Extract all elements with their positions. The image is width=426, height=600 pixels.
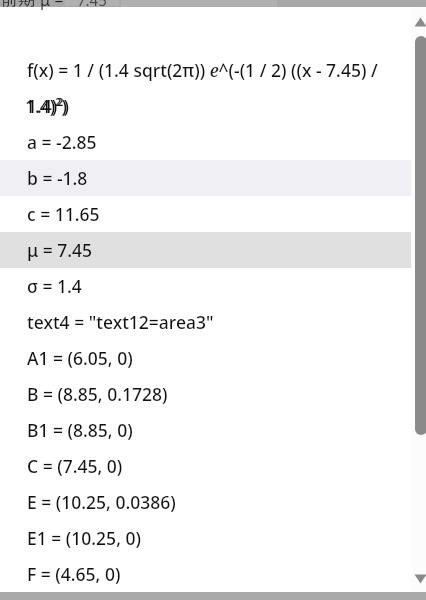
staticText: 7.45 [77, 0, 107, 10]
button[interactable]: F = (4.65, 0) [0, 556, 411, 592]
staticText: F = (4.65, 0) [27, 562, 121, 586]
button[interactable]: f(x) = 1 / (1.4 sqrt(2π)) e^(-(1 / 2) ((… [0, 52, 411, 88]
button[interactable]: B = (8.85, 0.1728) [0, 376, 411, 412]
staticText: 前期 [1, 0, 35, 10]
button[interactable]: Slider input row [0, 0, 426, 7]
staticText: 1.4)²) [27, 94, 69, 118]
staticText: 1.4)²) [25, 94, 67, 118]
staticText: f(x) = 1 / (1.4 sqrt(2π)) e^(-(1 / 2) ((… [27, 58, 378, 82]
button[interactable]: σ = 1.4 [0, 268, 411, 304]
button[interactable]: B1 = (8.85, 0) [0, 412, 411, 448]
button[interactable]: Scroll thumb [415, 36, 426, 435]
staticText: E = (10.25, 0.0386) [27, 490, 176, 514]
staticText: μ = 7.45 [27, 238, 93, 262]
staticText: E1 = (10.25, 0) [27, 526, 141, 550]
staticText: B1 = (8.85, 0) [27, 418, 133, 442]
staticText: A1 = (6.05, 0) [27, 346, 133, 370]
button[interactable]: c = 11.65 [0, 196, 411, 232]
staticText: B = (8.85, 0.1728) [27, 382, 168, 406]
staticText: C = (7.45, 0) [27, 454, 123, 478]
button[interactable]: A1 = (6.05, 0) [0, 340, 411, 376]
button[interactable]: E1 = (10.25, 0) [0, 520, 411, 556]
button[interactable]: μ = 7.45 [0, 232, 411, 268]
button[interactable]: b = -1.8 [0, 160, 411, 196]
button[interactable]: 1.4)²) [0, 88, 411, 124]
staticText: text4 = "text12=area3" [27, 310, 214, 334]
staticText: σ = 1.4 [27, 274, 82, 298]
staticText: b = -1.8 [27, 166, 88, 190]
staticText: a = -2.85 [27, 130, 97, 154]
button[interactable]: E = (10.25, 0.0386) [0, 484, 411, 520]
button[interactable]: C = (7.45, 0) [0, 448, 411, 484]
button[interactable]: text4 = "text12=area3" [0, 304, 411, 340]
staticText: μ = [40, 0, 64, 11]
staticText: c = 11.65 [27, 202, 100, 226]
button[interactable]: a = -2.85 [0, 124, 411, 160]
